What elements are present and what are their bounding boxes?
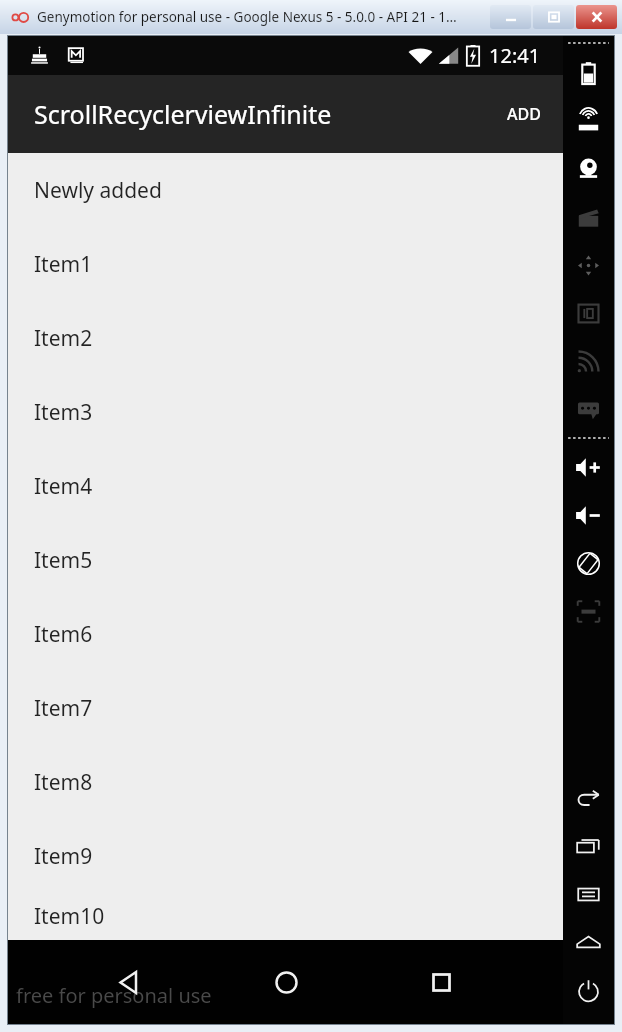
button[interactable]: Recent apps [563, 822, 614, 870]
staticText: Item6 [34, 620, 93, 649]
button[interactable]: SMS [563, 385, 614, 433]
button[interactable]: Item10 [8, 893, 563, 940]
button[interactable]: Newly added [8, 153, 563, 227]
button[interactable]: Back [563, 774, 614, 822]
staticText: Item2 [34, 324, 93, 353]
button[interactable]: Item2 [8, 301, 563, 375]
staticText: 12:41 [489, 42, 541, 69]
button[interactable]: Power [563, 966, 614, 1014]
button[interactable]: Battery [563, 49, 614, 97]
button[interactable]: Item6 [8, 597, 563, 671]
button[interactable]: Item9 [8, 819, 563, 893]
button[interactable]: Network [563, 337, 614, 385]
button[interactable]: Camera [563, 145, 614, 193]
button[interactable]: Recent apps [408, 949, 474, 1015]
button[interactable]: Home [253, 949, 319, 1015]
button[interactable]: GPS [563, 97, 614, 145]
staticText: Newly added [34, 176, 162, 205]
staticText: Genymotion for personal use - Google Nex… [37, 8, 457, 26]
button[interactable]: Back [97, 949, 163, 1015]
button[interactable]: Rotate [563, 539, 614, 587]
button[interactable]: Item1 [8, 227, 563, 301]
staticText: Item10 [34, 902, 105, 931]
staticText: free for personal use [16, 982, 212, 1009]
staticText: Item7 [34, 694, 93, 723]
button[interactable]: Item7 [8, 671, 563, 745]
button[interactable]: Identifiers [563, 289, 614, 337]
button[interactable]: Home [563, 918, 614, 966]
button[interactable]: Item3 [8, 375, 563, 449]
staticText: Item9 [34, 842, 93, 871]
staticText: ADD [507, 103, 541, 125]
button[interactable]: Volume down [563, 491, 614, 539]
button[interactable]: Actual size [563, 587, 614, 635]
button[interactable]: Item8 [8, 745, 563, 819]
button[interactable]: Minimize [490, 5, 531, 29]
button[interactable]: Item5 [8, 523, 563, 597]
button[interactable]: Maximize [533, 5, 574, 29]
staticText: Item4 [34, 472, 93, 501]
staticText: ScrollRecyclerviewInfinite [34, 97, 332, 131]
staticText: Item1 [34, 250, 93, 279]
button[interactable]: Menu [563, 870, 614, 918]
button[interactable]: Volume up [563, 443, 614, 491]
button[interactable]: Close [576, 5, 617, 29]
staticText: Item3 [34, 398, 93, 427]
staticText: Item5 [34, 546, 93, 575]
button[interactable]: ADD [485, 75, 563, 153]
button[interactable]: Item4 [8, 449, 563, 523]
button[interactable]: Video recording [563, 193, 614, 241]
button[interactable]: Dpad [563, 241, 614, 289]
staticText: Item8 [34, 768, 93, 797]
